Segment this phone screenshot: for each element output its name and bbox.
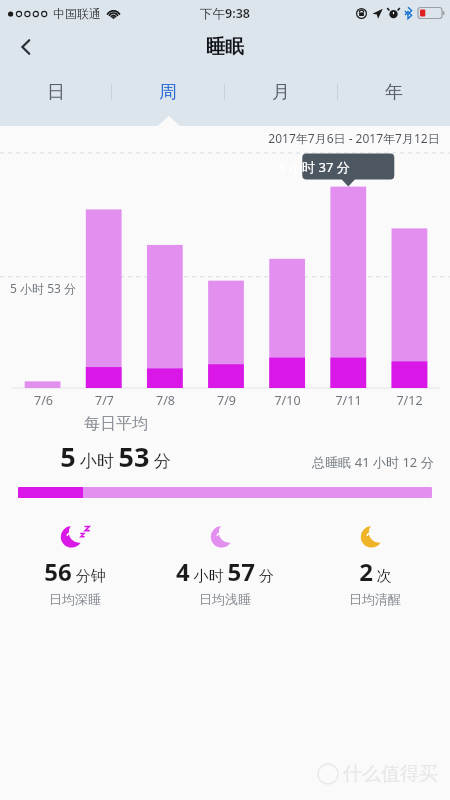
staticText: 7/11 bbox=[335, 392, 362, 409]
staticText: 日均清醒 bbox=[349, 591, 401, 607]
button[interactable]: 4 小时 57 分 bbox=[150, 516, 300, 611]
staticText: 睡眠 bbox=[206, 35, 244, 59]
staticText: 日均深睡 bbox=[49, 591, 101, 607]
staticText: 8 小时 37 分 bbox=[278, 158, 350, 176]
staticText: 下午9:38 bbox=[200, 5, 250, 22]
staticText: 日 bbox=[47, 81, 65, 104]
staticText: 4 小时 57 分 bbox=[176, 555, 274, 588]
staticText: 56 分钟 bbox=[44, 555, 106, 588]
button[interactable]: 2 次 bbox=[300, 516, 450, 611]
staticText: 每日平均 bbox=[84, 414, 148, 434]
staticText: 5 小时 53 分 bbox=[10, 280, 76, 296]
staticText: 年 bbox=[385, 81, 403, 104]
staticText: 7/12 bbox=[396, 392, 423, 409]
staticText: 什么值得买 bbox=[343, 762, 438, 786]
button[interactable]: Back bbox=[4, 26, 48, 68]
staticText: 5 小时 53 分 bbox=[60, 438, 171, 475]
button[interactable]: 56 分钟 bbox=[0, 516, 150, 611]
staticText: 7/6 bbox=[34, 392, 53, 409]
staticText: 总睡眠 41 小时 12 分 bbox=[312, 453, 434, 471]
button[interactable]: 年 bbox=[338, 68, 450, 116]
staticText: 7/9 bbox=[217, 392, 236, 409]
button[interactable]: 月 bbox=[225, 68, 337, 116]
staticText: 中国联通 bbox=[53, 6, 101, 21]
staticText: 2017年7月6日 - 2017年7月12日 bbox=[268, 130, 440, 146]
staticText: 月 bbox=[272, 81, 290, 104]
button[interactable]: 周 bbox=[112, 68, 224, 116]
staticText: 7/7 bbox=[95, 392, 114, 409]
staticText: 2 次 bbox=[359, 555, 392, 588]
staticText: 日均浅睡 bbox=[199, 591, 251, 607]
button[interactable]: 日 bbox=[0, 68, 111, 116]
staticText: 7/8 bbox=[156, 392, 175, 409]
staticText: 周 bbox=[159, 81, 177, 104]
staticText: 7/10 bbox=[274, 392, 301, 409]
